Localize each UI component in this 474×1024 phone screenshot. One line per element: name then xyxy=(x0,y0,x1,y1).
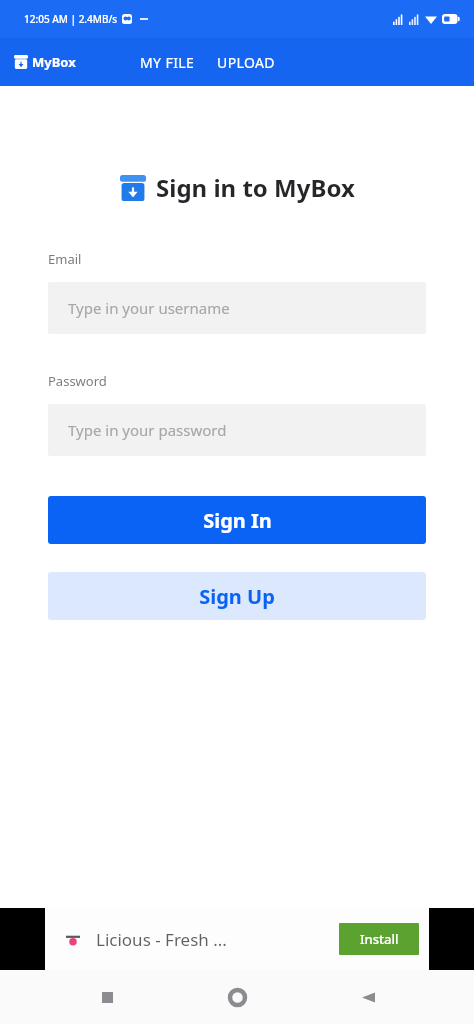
staticText: Sign In xyxy=(203,507,272,534)
staticText: Password xyxy=(48,372,107,390)
button[interactable]: Licious - Fresh ... xyxy=(62,923,419,955)
staticText: Type in your password xyxy=(68,420,227,440)
button[interactable]: Install xyxy=(339,923,419,955)
staticText: MyBox xyxy=(32,53,76,71)
button[interactable]: MY FILE xyxy=(136,45,199,80)
staticText: Licious - Fresh ... xyxy=(96,928,227,951)
staticText: Install xyxy=(360,930,399,948)
button[interactable]: Recents xyxy=(83,973,131,1021)
staticText: 12:05 AM | 2.4MB/s xyxy=(24,12,118,26)
staticText: Email xyxy=(48,250,82,268)
staticText: UPLOAD xyxy=(217,53,275,72)
staticText: Sign Up xyxy=(199,583,275,610)
button[interactable]: Sign In xyxy=(48,496,426,544)
button[interactable]: Type in your username xyxy=(48,282,426,334)
button[interactable]: Back xyxy=(344,973,392,1021)
staticText: MY FILE xyxy=(140,53,195,72)
button[interactable]: Type in your password xyxy=(48,404,426,456)
button[interactable]: Sign Up xyxy=(48,572,426,620)
staticText: Sign in to MyBox xyxy=(156,171,355,204)
button[interactable]: Home xyxy=(213,973,261,1021)
staticText: Type in your username xyxy=(68,298,230,318)
button[interactable]: MyBox xyxy=(14,53,76,71)
button[interactable]: UPLOAD xyxy=(213,45,279,80)
